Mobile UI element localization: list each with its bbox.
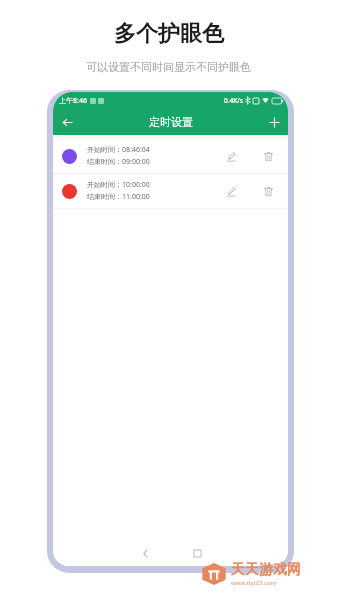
staticText: 可以设置不同时间显示不同护眼色 xyxy=(86,60,251,74)
button[interactable]: 开始时间：10:00:00 xyxy=(53,174,288,208)
button[interactable]: Delete xyxy=(257,180,279,202)
staticText: 多个护眼色 xyxy=(114,20,224,48)
staticText: 结束时间：09:00:00 xyxy=(87,157,150,167)
button[interactable]: 开始时间：08:46:04 xyxy=(53,139,288,173)
staticText: 开始时间：10:00:00 xyxy=(87,180,150,190)
staticText: 天天游戏网 xyxy=(231,561,301,579)
button[interactable]: Delete xyxy=(257,145,279,167)
button[interactable]: Back xyxy=(134,542,156,564)
staticText: 结束时间：11:00:00 xyxy=(87,192,150,202)
button[interactable]: Add xyxy=(264,112,284,132)
button[interactable]: Home xyxy=(186,542,208,564)
button[interactable]: Edit xyxy=(219,145,241,167)
staticText: 0.4K/s xyxy=(224,96,243,105)
button[interactable]: Edit xyxy=(219,180,241,202)
staticText: 定时设置 xyxy=(149,115,193,129)
button[interactable]: Back xyxy=(57,112,77,132)
staticText: www.ttyl23.com xyxy=(231,579,277,587)
staticText: 开始时间：08:46:04 xyxy=(87,145,150,155)
staticText: 上午8:46 xyxy=(59,96,87,106)
